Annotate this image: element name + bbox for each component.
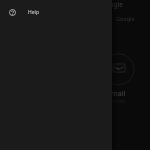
staticText: in seconds xyxy=(103,98,126,104)
staticText: Google xyxy=(116,15,135,22)
staticText: Help xyxy=(28,9,40,16)
staticText: Gmail xyxy=(106,89,126,99)
button[interactable]: Help xyxy=(0,0,112,25)
other: Help xyxy=(9,9,16,16)
staticText: Google xyxy=(101,0,123,9)
